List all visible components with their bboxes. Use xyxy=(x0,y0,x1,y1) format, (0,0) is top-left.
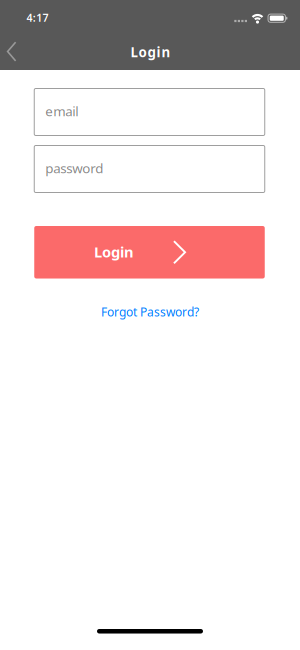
staticText: 4:17 xyxy=(26,10,49,25)
staticText: email xyxy=(45,102,78,120)
staticText: Login xyxy=(130,43,171,61)
button[interactable] xyxy=(0,36,24,66)
staticText: Forgot Password? xyxy=(101,304,199,320)
button[interactable]: Login xyxy=(35,226,265,278)
button[interactable]: Forgot Password? xyxy=(101,304,199,320)
staticText: Login xyxy=(94,242,134,261)
button[interactable]: password xyxy=(35,145,265,192)
button[interactable]: email xyxy=(35,88,265,135)
staticText: password xyxy=(45,159,103,177)
